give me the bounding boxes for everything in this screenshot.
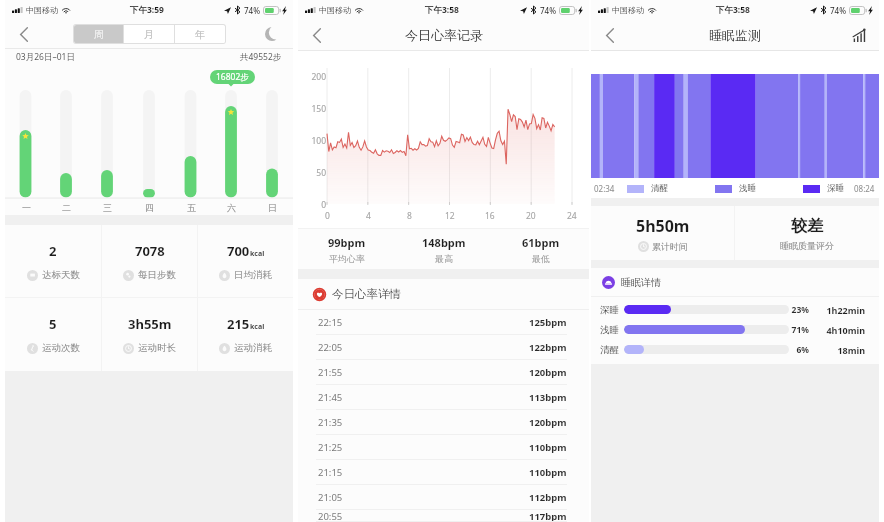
staticText: 120bpm	[529, 366, 567, 379]
staticText: 年	[195, 28, 205, 41]
staticText: 4h10min	[820, 324, 865, 335]
staticText: 下午3:58	[425, 4, 459, 16]
staticText: 今日心率详情	[332, 287, 401, 301]
staticText: 700	[227, 242, 250, 260]
staticText: 122bpm	[529, 341, 567, 354]
button[interactable]: 年	[175, 25, 225, 43]
button[interactable]: 较差	[735, 206, 879, 260]
staticText: 日	[268, 202, 277, 213]
staticText: 110bpm	[529, 466, 567, 479]
staticText: 16802步	[216, 71, 249, 83]
staticText: 清醒	[651, 183, 668, 194]
button[interactable]: 2	[5, 225, 101, 297]
staticText: 深睡	[827, 183, 844, 194]
staticText: 二	[62, 202, 71, 213]
staticText: kcal	[250, 322, 265, 332]
staticText: 08:24	[854, 183, 875, 194]
staticText: 中国移动	[319, 5, 351, 15]
staticText: 100	[302, 135, 326, 147]
button[interactable]: 7078	[102, 225, 197, 297]
staticText: 7078	[135, 242, 165, 260]
button[interactable]: 700	[198, 225, 293, 297]
staticText: 03月26日–01日	[16, 51, 75, 63]
staticText: 74%	[830, 5, 846, 16]
button[interactable]: 今日心率详情	[313, 279, 589, 309]
button[interactable]: 215	[198, 298, 293, 371]
staticText: 110bpm	[529, 441, 567, 454]
staticText: 74%	[244, 5, 260, 16]
staticText: 8	[407, 210, 412, 222]
staticText: 3h55m	[128, 315, 172, 333]
button[interactable]: 21:45	[298, 385, 589, 410]
button[interactable]: 21:05	[298, 485, 589, 510]
staticText: 2	[49, 242, 57, 260]
button[interactable]: 21:25	[298, 435, 589, 460]
staticText: 21:35	[318, 416, 343, 429]
button[interactable]: 61bpm	[492, 229, 589, 269]
staticText: 99bpm	[328, 235, 366, 250]
staticText: 24	[567, 210, 577, 222]
staticText: 日均消耗	[234, 269, 272, 281]
staticText: 22:15	[318, 316, 343, 329]
staticText: 每日步数	[138, 269, 176, 281]
button[interactable]: 月	[124, 25, 174, 43]
staticText: 累计时间	[652, 241, 688, 252]
button[interactable]: 20:55	[298, 510, 589, 522]
button[interactable]: 99bpm	[298, 229, 395, 269]
staticText: 中国移动	[612, 5, 644, 15]
button[interactable]: 21:55	[298, 360, 589, 385]
staticText: 21:45	[318, 391, 343, 404]
staticText: 睡眠详情	[621, 276, 661, 289]
button[interactable]: 睡眠详情	[602, 268, 879, 296]
button[interactable]: 22:05	[298, 335, 589, 360]
staticText: 浅睡	[739, 183, 756, 194]
staticText: 148bpm	[422, 235, 466, 250]
staticText: 215	[227, 315, 250, 333]
staticText: 22:05	[318, 341, 343, 354]
staticText: 达标天数	[42, 269, 80, 281]
staticText: 中国移动	[26, 5, 58, 15]
button[interactable]: Statistics	[852, 28, 866, 42]
staticText: 1h22min	[820, 304, 865, 315]
staticText: 4	[366, 210, 371, 222]
button[interactable]: 21:35	[298, 410, 589, 435]
staticText: 21:05	[318, 491, 343, 504]
staticText: 23%	[790, 304, 809, 315]
button[interactable]: 周	[74, 25, 123, 43]
staticText: 150	[302, 103, 326, 115]
staticText: 74%	[540, 5, 556, 16]
staticText: kcal	[250, 249, 265, 259]
button[interactable]: 5	[5, 298, 101, 371]
staticText: 睡眠监测	[709, 27, 761, 43]
staticText: 三	[103, 202, 112, 213]
staticText: 21:55	[318, 366, 343, 379]
staticText: 5	[49, 315, 57, 333]
staticText: 120bpm	[529, 416, 567, 429]
staticText: 20:55	[318, 510, 343, 522]
button[interactable]: Back	[606, 28, 614, 43]
button[interactable]: 3h55m	[102, 298, 197, 371]
staticText: 一	[22, 202, 31, 213]
staticText: 18min	[820, 344, 865, 355]
button[interactable]: 5h50m	[591, 206, 734, 260]
staticText: 16	[485, 210, 495, 222]
button[interactable]: Back	[20, 27, 28, 42]
staticText: 6%	[790, 344, 809, 355]
button[interactable]: Night mode	[265, 27, 279, 41]
button[interactable]: 148bpm	[395, 229, 492, 269]
staticText: 20	[526, 210, 536, 222]
staticText: 五	[187, 202, 196, 213]
staticText: 71%	[790, 324, 809, 335]
button[interactable]: Back	[313, 28, 321, 43]
staticText: 月	[144, 28, 154, 41]
staticText: 112bpm	[529, 491, 567, 504]
staticText: 200	[302, 71, 326, 83]
button[interactable]: 22:15	[298, 310, 589, 335]
staticText: 50	[302, 167, 326, 179]
staticText: 最高	[435, 253, 453, 264]
staticText: 113bpm	[529, 391, 567, 404]
button[interactable]: 21:15	[298, 460, 589, 485]
staticText: 0	[302, 199, 326, 211]
staticText: 运动次数	[42, 342, 80, 354]
staticText: 四	[145, 202, 154, 213]
